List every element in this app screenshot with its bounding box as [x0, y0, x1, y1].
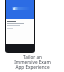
staticText: Tailor an Immersive Exam App Experience	[14, 54, 51, 70]
